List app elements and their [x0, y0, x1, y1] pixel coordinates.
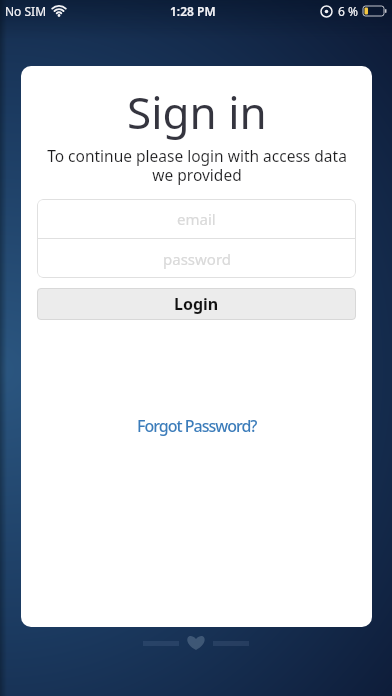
staticText: 1:28 PM: [170, 3, 216, 19]
button[interactable]: email: [37, 199, 356, 238]
staticText: 6 %: [338, 3, 358, 19]
staticText: To continue please login with access dat…: [47, 145, 347, 185]
staticText: Forgot Password?: [137, 415, 257, 437]
staticText: email: [177, 209, 216, 229]
button[interactable]: Forgot Password?: [137, 415, 257, 437]
staticText: Sign in: [127, 82, 267, 142]
staticText: password: [163, 249, 231, 269]
staticText: No SIM: [5, 3, 47, 19]
button[interactable]: Login: [37, 288, 356, 320]
staticText: Login: [174, 293, 219, 315]
button[interactable]: password: [37, 239, 356, 278]
